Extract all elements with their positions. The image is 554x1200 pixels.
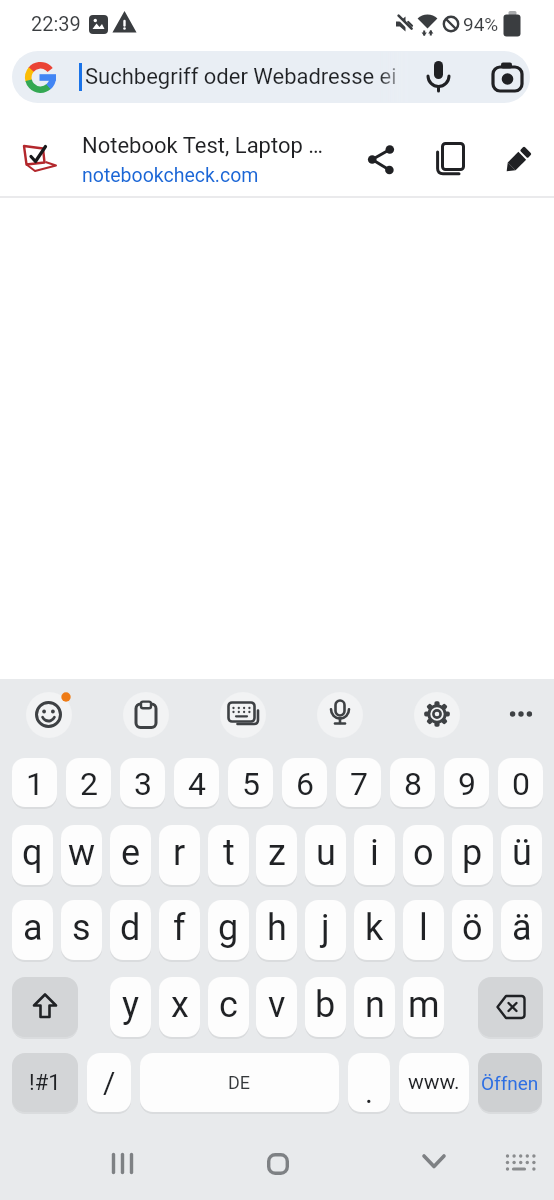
staticText: s — [72, 907, 91, 949]
staticText: w — [68, 832, 96, 874]
staticText: v — [268, 984, 286, 1026]
button[interactable]: p — [452, 825, 493, 885]
button[interactable]: s — [61, 900, 102, 960]
button[interactable]: v — [256, 977, 297, 1037]
button[interactable] — [12, 51, 530, 103]
button[interactable]: 3 — [120, 758, 165, 807]
button[interactable]: r — [159, 825, 200, 885]
staticText: 4 — [188, 765, 206, 803]
button[interactable]: DE — [140, 1053, 339, 1112]
button[interactable]: i — [354, 825, 395, 885]
button[interactable] — [425, 135, 473, 183]
button[interactable] — [357, 135, 405, 183]
button[interactable]: e — [110, 825, 151, 885]
button[interactable]: 5 — [228, 758, 273, 807]
button[interactable]: f — [159, 900, 200, 960]
staticText: o — [413, 832, 434, 874]
button[interactable]: b — [305, 977, 346, 1037]
button[interactable] — [488, 55, 526, 99]
button[interactable]: k — [354, 900, 395, 960]
staticText: Notebook Test, Laptop … — [82, 133, 324, 159]
staticText: k — [365, 907, 384, 949]
staticText: d — [120, 907, 141, 949]
button[interactable]: 1 — [12, 758, 57, 807]
staticText: t — [223, 832, 235, 874]
staticText: 6 — [296, 765, 314, 803]
staticText: r — [173, 832, 186, 874]
button[interactable] — [420, 55, 458, 99]
button[interactable]: 7 — [336, 758, 381, 807]
staticText: u — [316, 832, 336, 874]
button[interactable]: 2 — [66, 758, 111, 807]
staticText: Öffnen — [481, 1072, 539, 1094]
button[interactable]: q — [12, 825, 53, 885]
button[interactable] — [494, 135, 542, 183]
button[interactable] — [26, 692, 72, 738]
button[interactable] — [220, 692, 266, 738]
button[interactable]: / — [87, 1053, 131, 1112]
staticText: f — [173, 907, 186, 949]
staticText: 7 — [350, 765, 368, 803]
button[interactable]: x — [159, 977, 200, 1037]
button[interactable]: t — [208, 825, 249, 885]
button[interactable]: 4 — [174, 758, 219, 807]
button[interactable]: www. — [399, 1053, 469, 1112]
button[interactable]: d — [110, 900, 151, 960]
button[interactable]: h — [256, 900, 297, 960]
button[interactable]: 9 — [444, 758, 489, 807]
staticText: notebookcheck.com — [82, 164, 259, 187]
button[interactable]: o — [403, 825, 444, 885]
button[interactable] — [496, 1140, 546, 1190]
button[interactable]: j — [305, 900, 346, 960]
button[interactable]: z — [256, 825, 297, 885]
button[interactable]: ö — [452, 900, 493, 960]
staticText: Suchbegriff oder Webadresse ei — [85, 64, 397, 90]
staticText: l — [419, 907, 428, 949]
staticText: . — [365, 1075, 373, 1110]
staticText: q — [22, 832, 43, 874]
button[interactable] — [317, 692, 363, 738]
button[interactable]: ü — [501, 825, 542, 885]
staticText: 1 — [26, 765, 44, 803]
staticText: x — [171, 984, 189, 1026]
button[interactable] — [0, 116, 554, 196]
staticText: !#1 — [29, 1070, 61, 1096]
button[interactable] — [403, 1134, 465, 1194]
staticText: c — [219, 984, 238, 1026]
button[interactable]: Öffnen — [478, 1053, 542, 1112]
button[interactable]: 8 — [390, 758, 435, 807]
button[interactable]: ä — [501, 900, 542, 960]
staticText: 3 — [134, 765, 152, 803]
button[interactable]: m — [403, 977, 444, 1037]
button[interactable] — [12, 977, 78, 1037]
staticText: ä — [512, 907, 532, 949]
staticText: g — [218, 907, 239, 949]
button[interactable] — [478, 977, 543, 1037]
button[interactable] — [123, 692, 169, 738]
staticText: j — [321, 907, 330, 949]
button[interactable]: c — [208, 977, 249, 1037]
button[interactable]: y — [110, 977, 151, 1037]
button[interactable] — [92, 1134, 154, 1194]
button[interactable]: u — [305, 825, 346, 885]
button[interactable]: n — [354, 977, 395, 1037]
button[interactable]: l — [403, 900, 444, 960]
button[interactable]: 0 — [498, 758, 543, 807]
staticText: / — [103, 1065, 116, 1100]
button[interactable] — [247, 1134, 309, 1194]
staticText: 94% — [463, 13, 499, 35]
button[interactable]: w — [61, 825, 102, 885]
staticText: n — [365, 984, 385, 1026]
staticText: ö — [462, 907, 483, 949]
button[interactable]: a — [12, 900, 53, 960]
staticText: p — [462, 832, 483, 874]
button[interactable]: . — [348, 1053, 390, 1112]
staticText: ü — [512, 832, 532, 874]
button[interactable] — [498, 692, 544, 738]
button[interactable]: !#1 — [12, 1053, 78, 1112]
button[interactable]: g — [208, 900, 249, 960]
button[interactable]: 6 — [282, 758, 327, 807]
staticText: 22:39 — [31, 12, 81, 35]
staticText: 8 — [404, 765, 422, 803]
button[interactable] — [414, 692, 460, 738]
